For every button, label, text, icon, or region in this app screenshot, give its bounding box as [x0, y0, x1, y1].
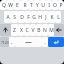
- button[interactable]: Y: [34, 0, 40, 10]
- staticText: M: [49, 27, 54, 34]
- button[interactable]: Shift: [0, 24, 11, 36]
- staticText: Y: [36, 2, 39, 9]
- button[interactable]: J: [43, 11, 49, 23]
- button[interactable]: V: [30, 24, 36, 36]
- button[interactable]: .: [42, 37, 48, 47]
- staticText: E: [16, 2, 19, 9]
- button[interactable]: O: [52, 0, 58, 10]
- button[interactable]: U: [40, 0, 46, 10]
- button[interactable]: Q: [0, 0, 7, 10]
- staticText: G: [32, 14, 36, 21]
- staticText: Z: [13, 27, 16, 34]
- staticText: .: [44, 39, 46, 46]
- staticText: T: [30, 2, 33, 9]
- button[interactable]: G: [31, 11, 37, 23]
- button[interactable]: C: [24, 24, 30, 36]
- button[interactable]: W: [7, 0, 14, 10]
- button[interactable]: X: [18, 24, 24, 36]
- staticText: N: [43, 27, 47, 34]
- staticText: K: [50, 14, 54, 21]
- staticText: C: [25, 27, 29, 34]
- staticText: Q: [2, 2, 6, 9]
- staticText: B: [37, 27, 41, 34]
- button[interactable]: P: [58, 0, 64, 10]
- staticText: U: [41, 2, 45, 9]
- button[interactable]: Symbols: [0, 37, 9, 47]
- staticText: L: [57, 14, 60, 21]
- button[interactable]: Z: [11, 24, 18, 36]
- button[interactable]: L: [55, 11, 61, 23]
- staticText: O: [53, 2, 57, 9]
- button[interactable]: D: [18, 11, 25, 23]
- staticText: V: [31, 27, 35, 34]
- staticText: A: [6, 14, 10, 21]
- staticText: R: [23, 2, 27, 9]
- staticText: W: [8, 2, 13, 9]
- staticText: P: [59, 2, 63, 9]
- button[interactable]: S: [11, 11, 18, 23]
- button[interactable]: K: [49, 11, 55, 23]
- button[interactable]: T: [28, 0, 34, 10]
- staticText: ?123: [1, 40, 9, 45]
- staticText: J: [45, 14, 47, 21]
- button[interactable]: Backspace: [54, 24, 64, 36]
- staticText: S: [13, 14, 16, 21]
- button[interactable]: N: [42, 24, 48, 36]
- staticText: X: [20, 27, 23, 34]
- staticText: ,: [11, 39, 13, 46]
- button[interactable]: Enter: [48, 37, 64, 47]
- button[interactable]: M: [48, 24, 54, 36]
- staticText: I: [48, 2, 50, 9]
- staticText: D: [20, 14, 24, 21]
- button[interactable]: H: [37, 11, 43, 23]
- button[interactable]: ,: [9, 37, 15, 47]
- button[interactable]: R: [21, 0, 28, 10]
- staticText: H: [38, 14, 42, 21]
- button[interactable]: B: [36, 24, 42, 36]
- button[interactable]: Space: [15, 37, 42, 47]
- button[interactable]: A: [4, 11, 11, 23]
- staticText: F: [27, 14, 30, 21]
- button[interactable]: F: [25, 11, 31, 23]
- button[interactable]: I: [46, 0, 52, 10]
- button[interactable]: E: [14, 0, 21, 10]
